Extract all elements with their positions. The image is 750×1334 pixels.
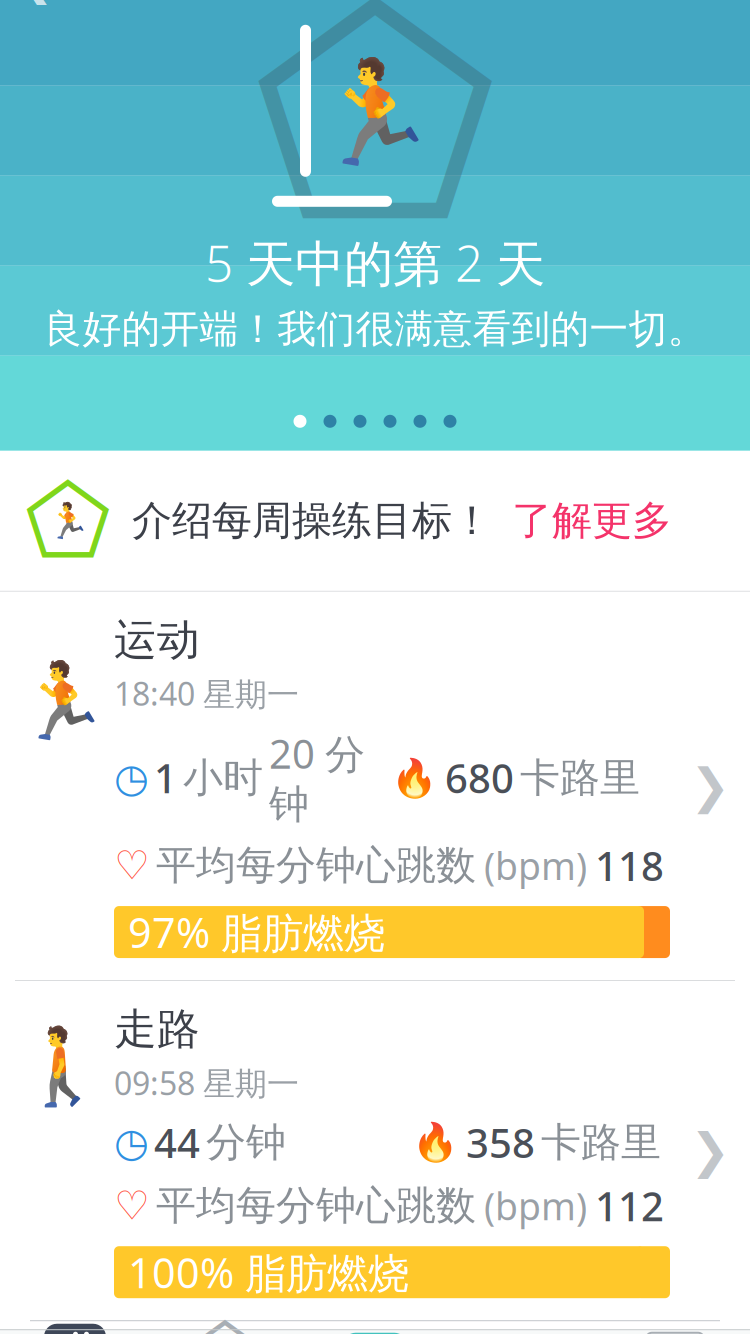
button[interactable]: 🏃 [0,592,750,980]
button[interactable]: ⬠ [0,451,750,591]
staticText: 🚶 [15,1024,108,1109]
button[interactable]: 👥 [450,1329,600,1334]
staticText: 680 [445,751,514,804]
staticText: 平均每分钟心跳数 [156,841,476,890]
staticText: 97% 脂肪燃烧 [128,905,385,959]
button[interactable]: 添加 [300,1329,450,1334]
staticText: 良好的开端！我们很满意看到的一切。 [43,305,706,353]
button[interactable]: 🚶 [0,981,750,1320]
staticText: 小时 [183,753,263,802]
staticText: 🔥 [391,756,437,799]
staticText: 👥 [487,1320,563,1334]
staticText: 运动 [114,614,200,666]
staticText: 5 天中的第 2 天 [205,230,545,295]
button[interactable]: 账户 [600,1329,750,1334]
staticText: 100% 脂肪燃烧 [128,1245,409,1300]
button[interactable]: ❮ [0,0,160,12]
staticText: 1 [154,751,177,804]
staticText: ⬠ [25,465,111,577]
staticText: 🏃 [15,659,108,745]
staticText: ＋ [344,1328,405,1334]
staticText: 🏃 [46,501,89,541]
staticText: ♡ [114,1183,150,1228]
staticText: 🔥 [412,1121,458,1164]
staticText: 118 [595,839,664,892]
staticText: ⬠ [253,0,496,273]
staticText: ❯ [690,759,730,813]
staticText: 介绍每周操练目标！ [132,496,492,545]
staticText: 锻炼项目 [298,0,474,6]
staticText: ❮ [16,0,54,5]
staticText: (bpm) [484,1181,587,1230]
staticText: 112 [595,1179,664,1232]
staticText: ❯ [690,1123,730,1178]
staticText: 了解更多 [512,496,672,545]
staticText: 分钟 [206,1118,286,1167]
staticText: (bpm) [484,841,587,890]
staticText: 走路 [114,1003,200,1055]
staticText: 卡路里 [520,753,640,802]
staticText: 20 分钟 [269,727,365,829]
button[interactable]: ⬠ [150,1329,300,1334]
staticText: 🏃 [312,56,438,172]
staticText: 358 [466,1116,535,1169]
staticText: ⬠ [189,1308,261,1334]
staticText: 09:58 星期一 [114,1061,299,1104]
staticText: 卡路里 [541,1118,661,1167]
staticText: 18:40 星期一 [114,672,299,715]
staticText: 44 [154,1116,200,1169]
button[interactable]: 数字面板 [0,1329,150,1334]
staticText: ♡ [114,843,150,888]
staticText: 平均每分钟心跳数 [156,1181,476,1230]
staticText: ◷ [114,1120,149,1165]
staticText: ◷ [114,755,149,800]
